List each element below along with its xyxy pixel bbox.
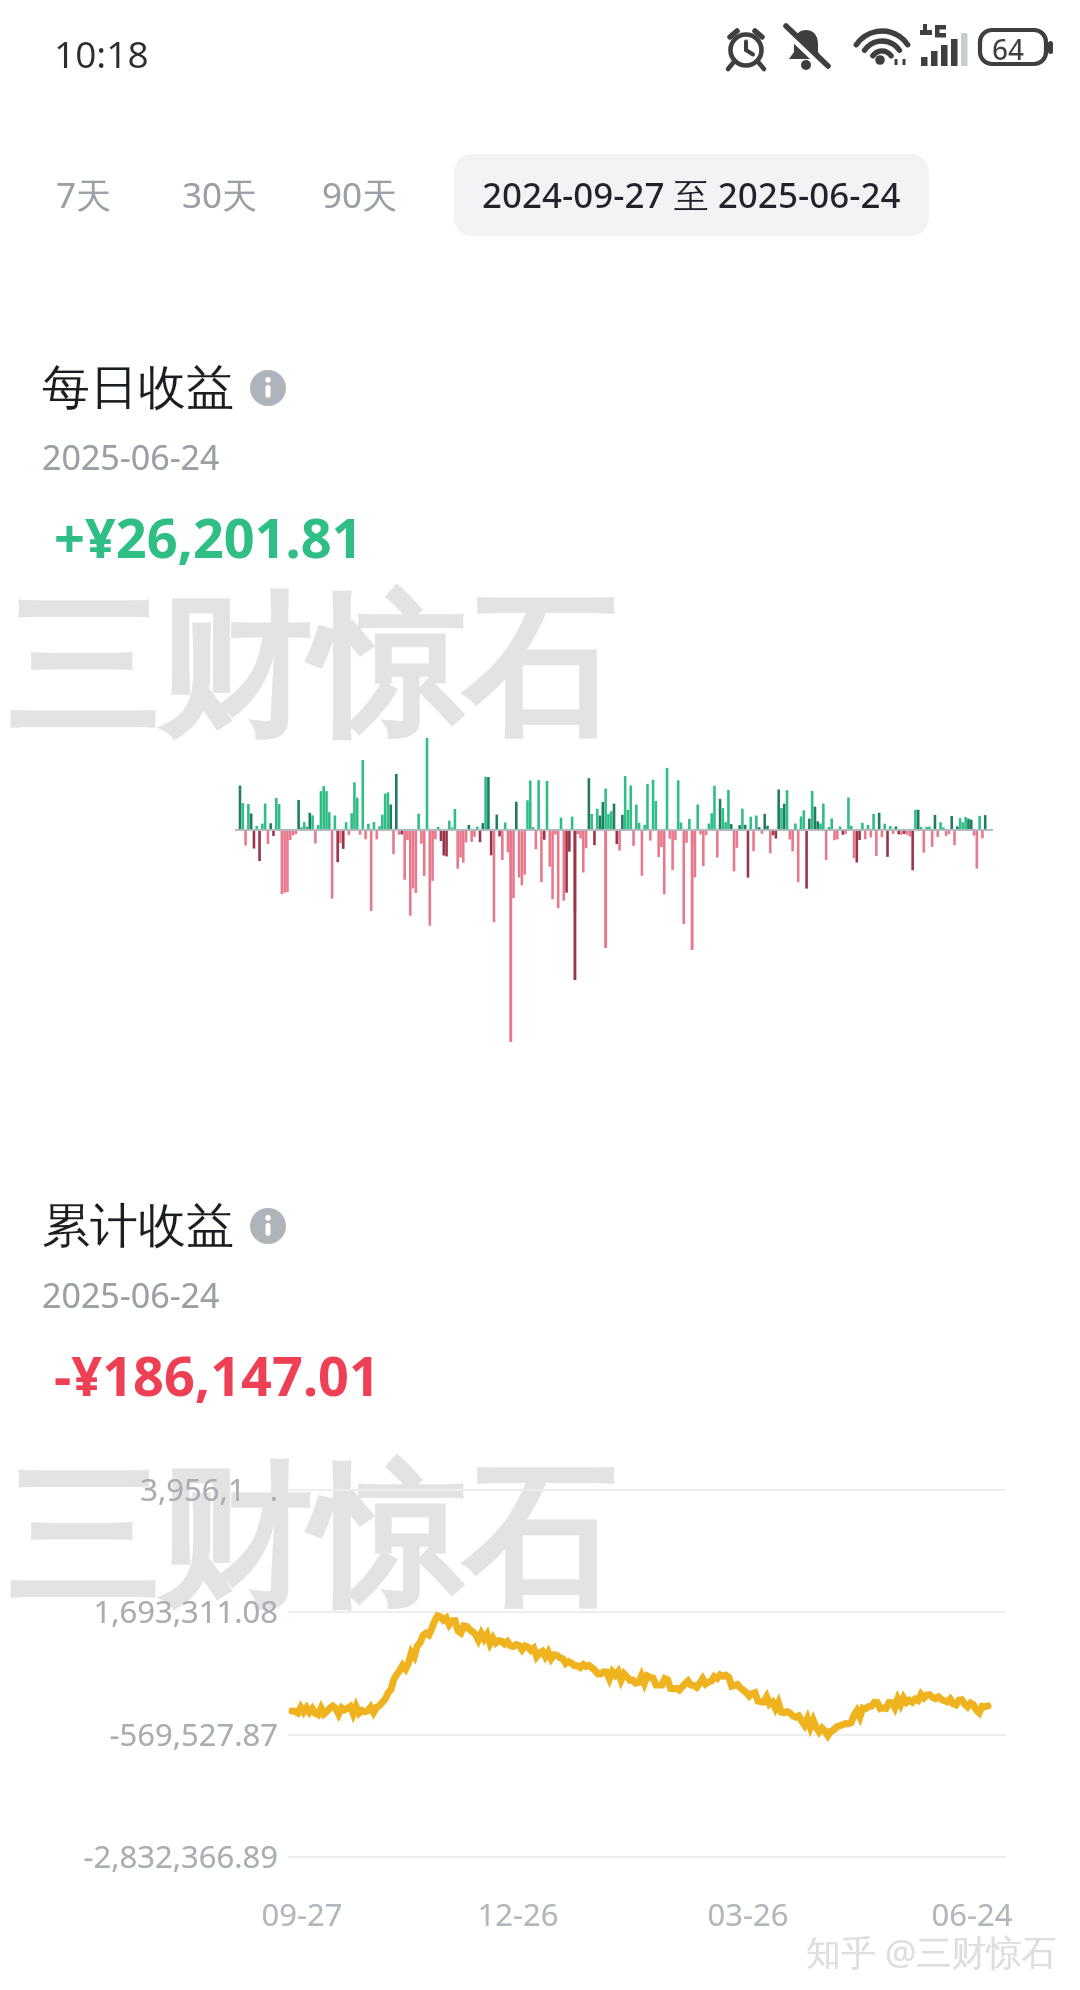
staticText: 06-24: [912, 1893, 1032, 1935]
staticText: 每日收益: [42, 358, 234, 418]
staticText: 3,956,1 .: [0, 1468, 278, 1510]
staticText: -569,527.87: [0, 1713, 278, 1755]
staticText: -2,832,366.89: [0, 1835, 278, 1877]
staticText: 1,693,311.08: [0, 1590, 278, 1632]
staticText: 30天: [182, 171, 258, 219]
staticText: 12-26: [458, 1893, 578, 1935]
button[interactable]: 7天: [52, 161, 116, 229]
staticText: 2025-06-24: [42, 1272, 220, 1318]
button[interactable]: 累计收益说明: [250, 1208, 286, 1244]
staticText: 64: [992, 30, 1025, 68]
staticText: 三财惊石: [6, 1444, 614, 1635]
staticText: 2024-09-27 至 2025-06-24: [482, 171, 901, 219]
staticText: 90天: [322, 171, 398, 219]
staticText: 三财惊石: [6, 574, 614, 765]
button[interactable]: 2024-09-27 至 2025-06-24: [454, 154, 929, 236]
staticText: 累计收益: [42, 1196, 234, 1256]
button[interactable]: 30天: [178, 161, 262, 229]
staticText: 2025-06-24: [42, 434, 220, 480]
staticText: 10:18: [54, 28, 149, 78]
staticText: +¥26,201.81: [54, 500, 363, 574]
staticText: 09-27: [242, 1893, 362, 1935]
staticText: -¥186,147.01: [54, 1338, 380, 1412]
button[interactable]: 90天: [318, 161, 402, 229]
staticText: 7天: [56, 171, 112, 219]
staticText: 03-26: [688, 1893, 808, 1935]
staticText: 知乎 @三财惊石: [806, 1928, 1057, 1976]
button[interactable]: 每日收益说明: [250, 370, 286, 406]
